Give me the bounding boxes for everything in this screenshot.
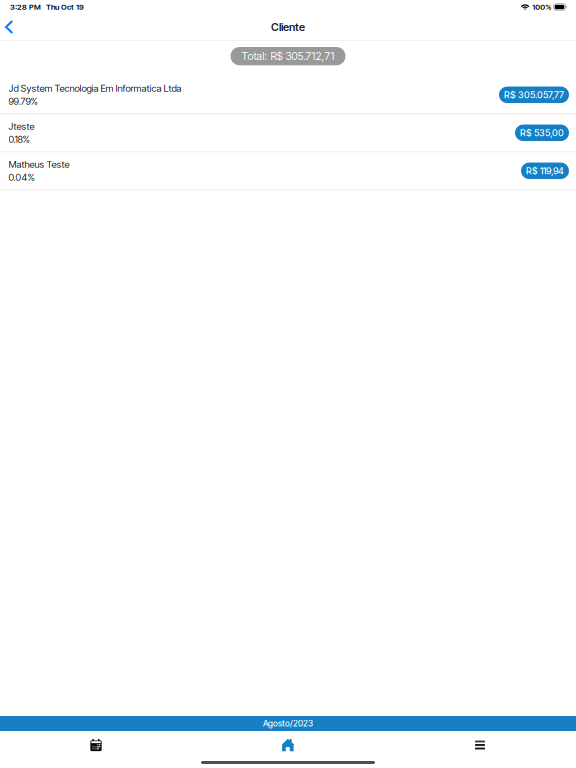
button[interactable]: Home [192,731,384,759]
button[interactable]: Back [0,14,26,40]
staticText: 3:28 PM [10,2,41,12]
button[interactable]: Calendar [0,731,192,759]
staticText: Thu Oct 19 [46,2,84,12]
staticText: 0.04% [8,172,34,183]
staticText: R$ 305.057,77 [504,89,564,100]
staticText: Total: R$ 305.712,71 [241,50,334,63]
staticText: Jd System Tecnologia Em Informatica Ltda [8,82,181,94]
staticText: 0.18% [8,134,29,145]
staticText: Cliente [271,20,305,34]
staticText: Matheus Teste [8,158,69,170]
button[interactable]: Matheus Teste [0,152,576,190]
staticText: R$ 535,00 [520,127,564,138]
staticText: 99.79% [8,96,37,107]
staticText: Agosto/2023 [263,718,313,729]
staticText: Jteste [8,120,34,132]
button[interactable]: Jteste [0,114,576,152]
button[interactable]: Menu [384,731,576,759]
button[interactable]: Jd System Tecnologia Em Informatica Ltda [0,76,576,114]
staticText: R$ 119,94 [526,165,564,176]
staticText: 100% [532,2,551,12]
